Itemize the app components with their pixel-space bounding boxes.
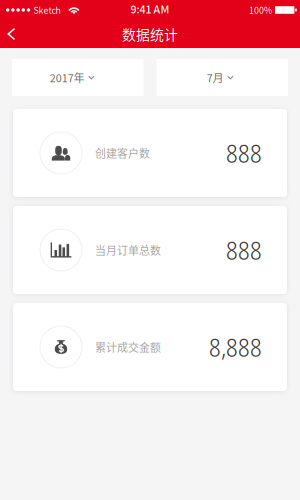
staticText: 数据统计	[122, 24, 178, 44]
staticText: 888	[226, 233, 262, 267]
staticText: 100%	[249, 4, 272, 16]
staticText: 888	[226, 136, 262, 170]
staticText: 2017年	[50, 70, 85, 85]
staticText: Sketch	[33, 4, 60, 16]
button[interactable]: 7月	[156, 59, 288, 96]
button[interactable]: 创建客户数	[13, 109, 287, 197]
staticText: 累计成交金额	[95, 339, 161, 355]
staticText: 创建客户数	[95, 145, 150, 161]
button[interactable]: 累计成交金额	[13, 303, 287, 391]
button[interactable]: 当月订单总数	[13, 206, 287, 294]
button[interactable]: Back	[0, 20, 23, 48]
staticText: 当月订单总数	[95, 242, 161, 258]
staticText: 7月	[207, 70, 224, 85]
button[interactable]: 2017年	[12, 59, 143, 96]
staticText: 9:41 AM	[130, 1, 169, 17]
staticText: 8,888	[209, 330, 262, 364]
